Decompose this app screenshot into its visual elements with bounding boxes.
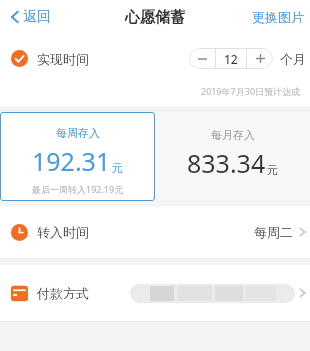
staticText: 192.31 bbox=[32, 144, 111, 178]
button[interactable]: 更换图片 bbox=[246, 5, 310, 29]
staticText: 个月 bbox=[280, 51, 306, 67]
button[interactable] bbox=[247, 48, 273, 69]
staticText: 12 bbox=[224, 51, 238, 67]
button[interactable] bbox=[189, 48, 215, 69]
button[interactable]: 每月存入 bbox=[155, 112, 310, 201]
staticText: 每月存入 bbox=[211, 128, 255, 142]
button[interactable]: 付款方式 bbox=[0, 265, 310, 321]
staticText: 每周存入 bbox=[56, 126, 100, 140]
staticText: 心愿储蓄 bbox=[125, 8, 185, 27]
staticText: 付款方式 bbox=[37, 285, 89, 301]
staticText: 转入时间 bbox=[37, 224, 89, 240]
staticText: 更换图片 bbox=[252, 9, 304, 25]
staticText: 每周二 bbox=[254, 224, 293, 240]
button[interactable]: 转入时间 bbox=[0, 206, 310, 258]
other: 选择付款方式 bbox=[299, 287, 306, 299]
staticText: 元 bbox=[112, 161, 123, 175]
staticText: 最后一周转入192.19元 bbox=[32, 183, 124, 195]
staticText: 元 bbox=[267, 163, 278, 177]
button[interactable]: 返回 bbox=[9, 4, 53, 30]
staticText: 返回 bbox=[23, 8, 51, 26]
staticText: 2019年7月30日预计达成 bbox=[201, 85, 301, 97]
button[interactable]: 每周存入 bbox=[0, 112, 155, 201]
staticText: 实现时间 bbox=[37, 51, 89, 67]
staticText: 833.34 bbox=[187, 146, 266, 180]
